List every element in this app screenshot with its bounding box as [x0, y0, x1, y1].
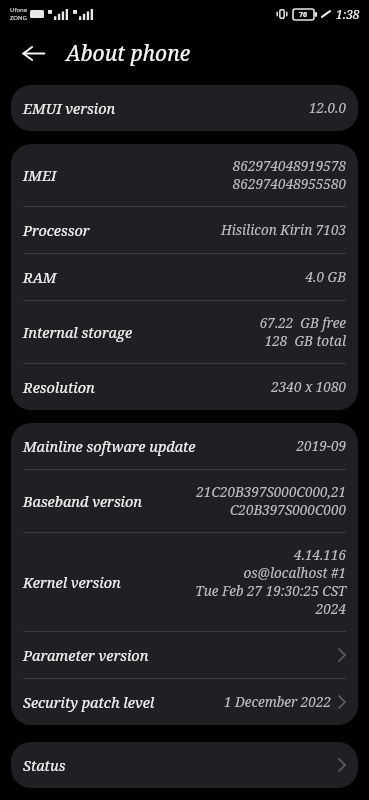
- staticText: 21C20B397S000C000,21: [196, 483, 346, 501]
- staticText: 4.14.116: [293, 546, 346, 564]
- button[interactable]: Internal storage: [11, 301, 358, 363]
- staticText: 1 December 2022: [223, 693, 331, 711]
- staticText: 12.0.0: [309, 99, 346, 117]
- button[interactable]: Resolution: [11, 364, 358, 410]
- staticText: 4.0 GB: [305, 268, 346, 286]
- staticText: 862974048955580: [232, 175, 346, 193]
- staticText: EMUI version: [23, 98, 116, 118]
- staticText: Resolution: [23, 377, 95, 397]
- staticText: Status: [23, 755, 66, 775]
- staticText: Baseband version: [23, 491, 143, 511]
- button[interactable]: RAM: [11, 254, 358, 300]
- button[interactable]: Mainline software update: [11, 423, 358, 469]
- staticText: 2340 x 1080: [271, 378, 346, 396]
- button[interactable]: Baseband version: [11, 470, 358, 532]
- button[interactable]: Processor: [11, 207, 358, 253]
- staticText: Mainline software update: [23, 436, 196, 456]
- staticText: Hisilicon Kirin 7103: [220, 221, 346, 239]
- staticText: Kernel version: [23, 572, 121, 592]
- staticText: ZONG: [10, 14, 27, 22]
- staticText: 2024: [315, 600, 346, 618]
- staticText: Parameter version: [23, 645, 149, 665]
- staticText: Tue Feb 27 19:30:25 CST: [195, 582, 346, 600]
- staticText: C20B397S000C000: [229, 501, 346, 519]
- staticText: 67.22 GB free: [259, 314, 346, 332]
- staticText: Security patch level: [23, 692, 155, 712]
- staticText: 1:38: [336, 6, 360, 22]
- staticText: Processor: [23, 220, 90, 240]
- button[interactable]: Back: [12, 32, 54, 74]
- staticText: Internal storage: [23, 322, 133, 342]
- staticText: RAM: [23, 267, 57, 287]
- button[interactable]: EMUI version: [11, 85, 358, 131]
- staticText: IMEI: [23, 165, 57, 185]
- button[interactable]: Security patch level: [11, 679, 358, 725]
- button[interactable]: Parameter version: [11, 632, 358, 678]
- staticText: os@localhost #1: [243, 564, 346, 582]
- staticText: 128 GB total: [264, 332, 346, 350]
- staticText: 862974048919578: [232, 157, 346, 175]
- button[interactable]: Kernel version: [11, 533, 358, 631]
- staticText: About phone: [66, 39, 191, 68]
- staticText: 76: [299, 10, 308, 20]
- button[interactable]: IMEI: [11, 144, 358, 206]
- button[interactable]: Status: [11, 742, 358, 788]
- staticText: 2019-09: [296, 437, 346, 455]
- staticText: Ufone: [10, 6, 28, 14]
